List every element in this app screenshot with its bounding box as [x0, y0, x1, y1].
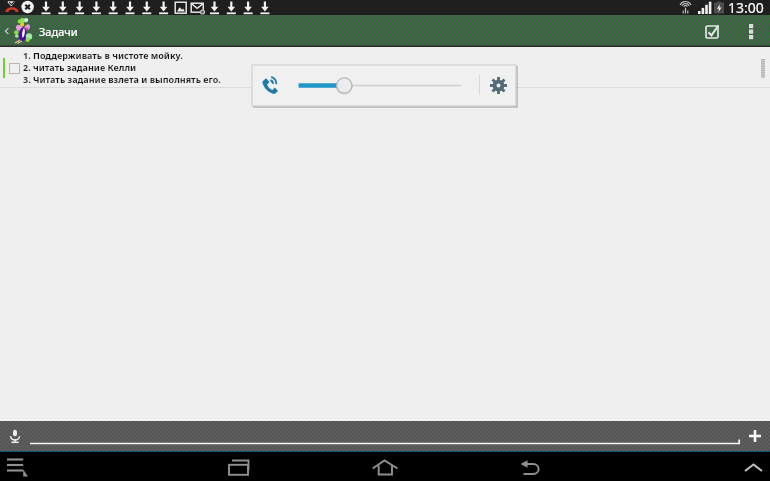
button[interactable]: Volume slider — [291, 75, 471, 96]
staticText: 13:00 — [728, 0, 764, 13]
staticText: 1. Поддерживать в чистоте мойку. — [23, 49, 183, 61]
button[interactable]: More options — [738, 18, 764, 44]
button[interactable]: Menu — [0, 452, 38, 481]
button[interactable]: Sound settings — [486, 73, 510, 97]
staticText: Задачи — [39, 24, 78, 39]
button[interactable]: Home — [361, 452, 409, 481]
button[interactable]: Back — [0, 15, 14, 47]
staticText: 3. Читать задание взлета и выполнять его… — [23, 73, 221, 85]
button[interactable]: Recent apps — [216, 452, 264, 481]
button[interactable]: 1. Поддерживать в чистоте мойку. — [0, 47, 770, 87]
button[interactable]: Add — [740, 420, 770, 452]
staticText: 2. читать задание Келли — [23, 61, 137, 73]
button[interactable]: Voice input — [4, 420, 26, 452]
button[interactable]: Ringer volume — [257, 71, 281, 99]
button[interactable]: Done — [698, 18, 726, 44]
button[interactable]: Back — [506, 452, 554, 481]
button[interactable]: Expand — [736, 452, 770, 481]
